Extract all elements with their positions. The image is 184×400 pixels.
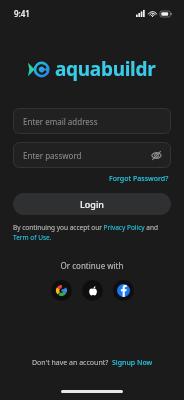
button[interactable]: Enter email address (13, 108, 171, 134)
staticText: Enter password (23, 150, 82, 161)
button[interactable]: Sign in with Apple (82, 280, 103, 301)
button[interactable]: Sign in with Facebook (113, 280, 134, 301)
staticText: aquabuildr (55, 56, 156, 82)
staticText: Don't have an account? (32, 358, 109, 368)
staticText: Signup Now (112, 358, 153, 368)
staticText: 9:41 (14, 8, 30, 19)
button[interactable]: Enter password (13, 142, 171, 168)
button[interactable]: Don't have an account? (0, 358, 184, 368)
button[interactable]: Forgot Password? (107, 173, 171, 185)
button[interactable]: Login (13, 193, 171, 215)
staticText: Forgot Password? (109, 174, 169, 184)
button[interactable]: Sign in with Google (51, 280, 72, 301)
staticText: Enter email address (23, 116, 98, 127)
other: aquabuildr logo (28, 61, 50, 78)
staticText: By continuing you accept our Privacy Pol… (13, 223, 171, 242)
button[interactable]: Toggle password visibility (149, 148, 163, 162)
button[interactable]: By continuing you accept our Privacy Pol… (13, 223, 171, 242)
staticText: Login (80, 198, 104, 210)
staticText: Or continue with (0, 260, 184, 271)
